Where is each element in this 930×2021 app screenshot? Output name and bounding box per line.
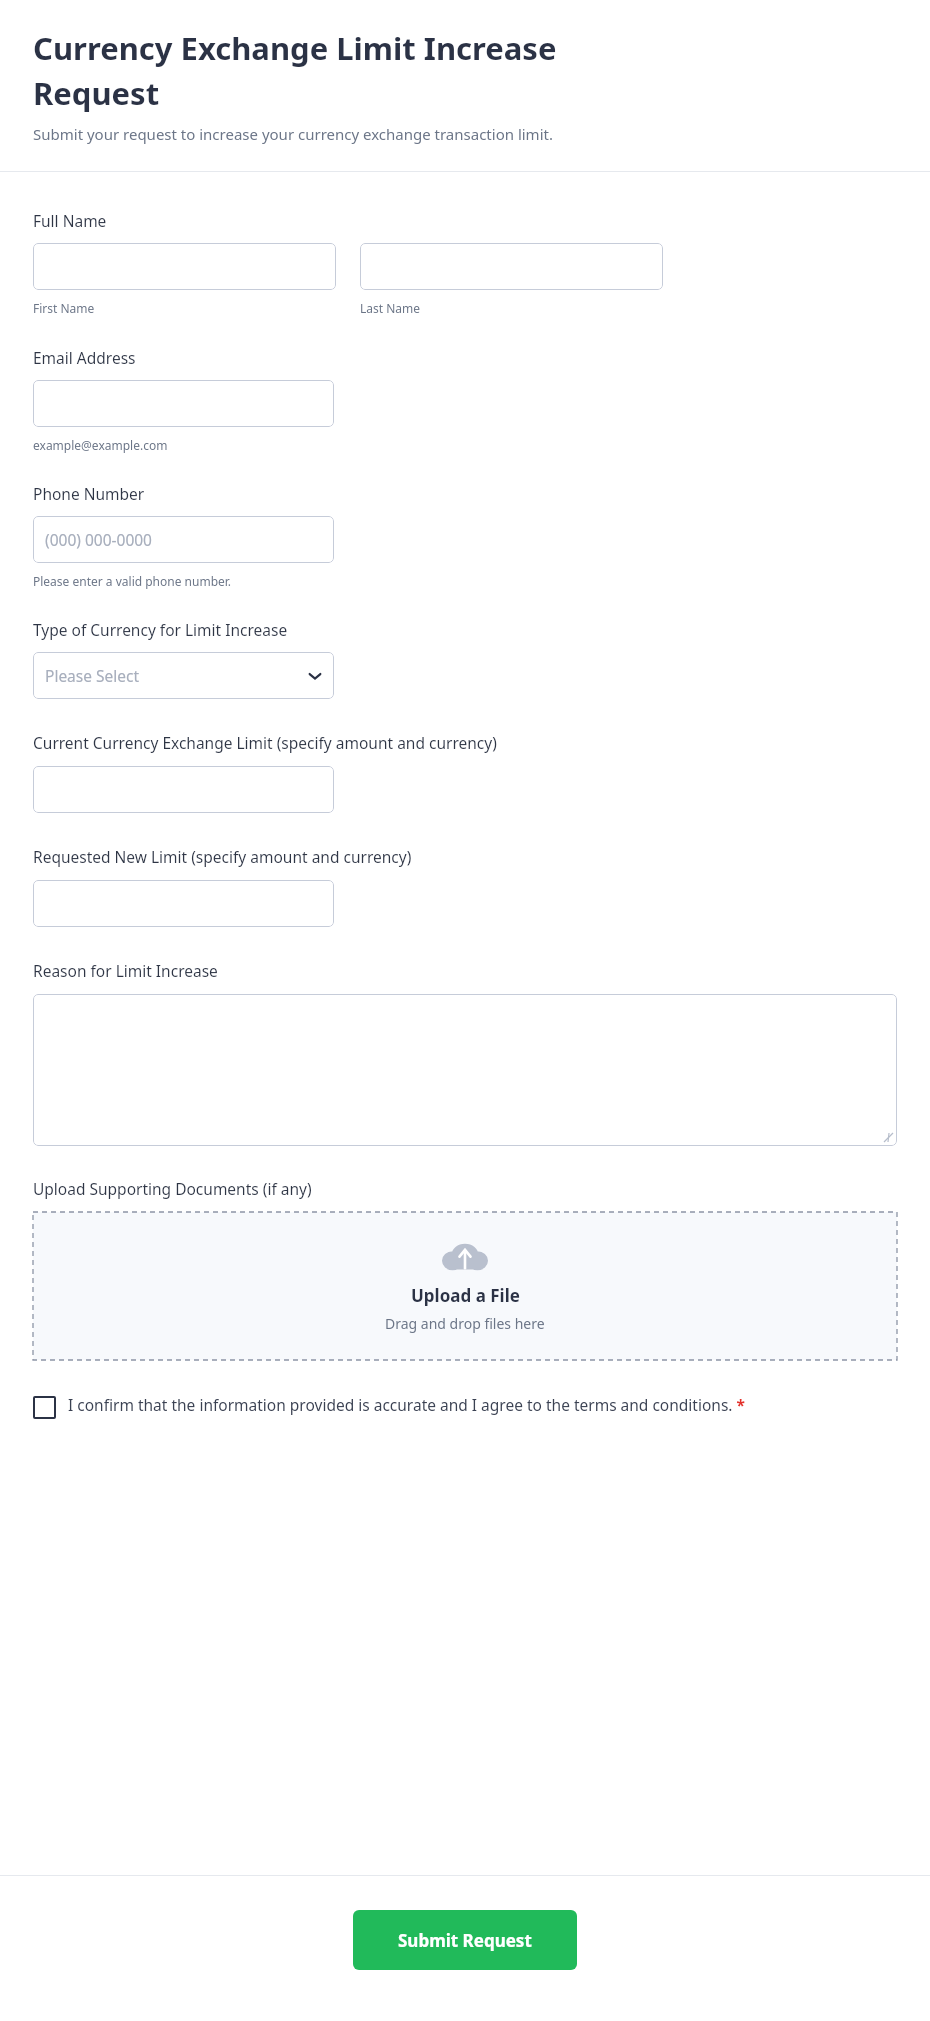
button[interactable] — [33, 766, 334, 813]
staticText: Upload a File — [411, 1284, 520, 1307]
staticText: Full Name — [33, 210, 107, 231]
staticText: Current Currency Exchange Limit (specify… — [33, 732, 497, 753]
staticText: Drag and drop files here — [385, 1314, 545, 1333]
staticText: Submit Request — [398, 1929, 532, 1952]
staticText: Please Select — [45, 665, 140, 686]
button[interactable] — [33, 380, 334, 427]
staticText: Type of Currency for Limit Increase — [33, 619, 288, 640]
staticText: Phone Number — [33, 483, 145, 504]
button[interactable] — [33, 994, 897, 1146]
staticText: Last Name — [360, 300, 421, 316]
button[interactable]: Please Select — [33, 652, 334, 699]
staticText: (000) 000-0000 — [45, 529, 152, 550]
staticText: Requested New Limit (specify amount and … — [33, 846, 412, 867]
staticText: I confirm that the information provided … — [68, 1394, 745, 1415]
staticText: Submit your request to increase your cur… — [33, 124, 553, 144]
button[interactable] — [33, 243, 336, 290]
button[interactable] — [360, 243, 663, 290]
staticText: Reason for Limit Increase — [33, 960, 218, 981]
button[interactable]: Upload a File — [33, 1212, 897, 1360]
staticText: First Name — [33, 300, 95, 316]
button[interactable]: (000) 000-0000 — [33, 516, 334, 563]
button[interactable]: I confirm that the information provided … — [33, 1394, 897, 1419]
staticText: Upload Supporting Documents (if any) — [33, 1178, 312, 1199]
button[interactable] — [33, 880, 334, 927]
button[interactable]: Submit Request — [353, 1910, 577, 1970]
staticText: Email Address — [33, 347, 136, 368]
staticText: example@example.com — [33, 437, 168, 453]
staticText: Currency Exchange Limit Increase Request — [33, 27, 557, 114]
staticText: Please enter a valid phone number. — [33, 573, 232, 589]
